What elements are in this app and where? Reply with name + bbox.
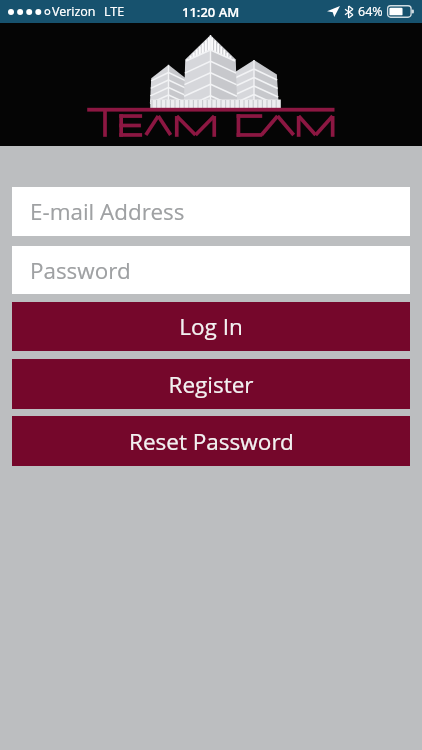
staticText: Password bbox=[30, 255, 131, 286]
button[interactable]: Password bbox=[12, 246, 410, 294]
staticText: 64% bbox=[358, 3, 383, 20]
button[interactable]: Register bbox=[12, 359, 410, 409]
staticText: 11:20 AM bbox=[182, 3, 240, 21]
staticText: Reset Password bbox=[129, 426, 294, 457]
button[interactable]: Reset Password bbox=[12, 416, 410, 466]
button[interactable]: Log In bbox=[12, 302, 410, 351]
button[interactable]: E-mail Address bbox=[12, 187, 410, 236]
staticText: Log In bbox=[179, 311, 243, 342]
staticText: Verizon bbox=[52, 3, 96, 20]
staticText: E-mail Address bbox=[30, 196, 185, 227]
staticText: Register bbox=[168, 369, 254, 400]
staticText: LTE bbox=[104, 3, 125, 20]
